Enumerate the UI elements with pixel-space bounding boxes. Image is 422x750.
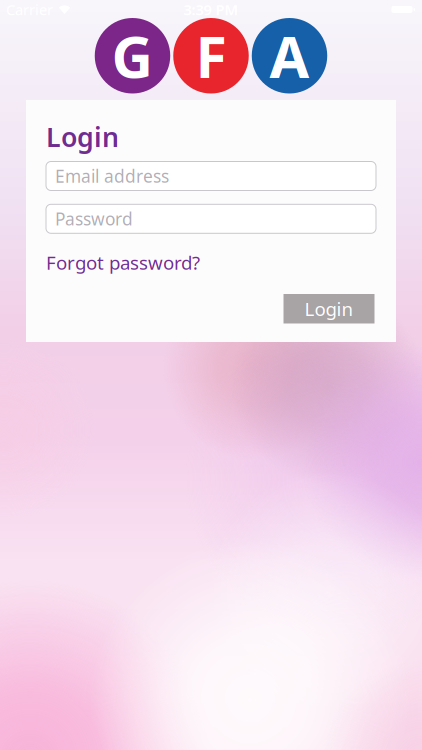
staticText: F — [195, 18, 226, 94]
staticText: G — [111, 18, 153, 94]
staticText: Login — [304, 296, 353, 321]
button[interactable]: Email address — [46, 161, 376, 190]
staticText: Password — [55, 207, 133, 230]
staticText: Login — [46, 119, 119, 154]
button[interactable]: Password — [46, 204, 376, 233]
staticText: Email address — [55, 164, 169, 187]
staticText: Forgot password? — [46, 250, 200, 275]
staticText: A — [269, 18, 309, 94]
staticText: 3:39 PM — [183, 0, 238, 19]
button[interactable]: Forgot password? — [46, 250, 200, 275]
button[interactable]: Login — [283, 294, 374, 323]
